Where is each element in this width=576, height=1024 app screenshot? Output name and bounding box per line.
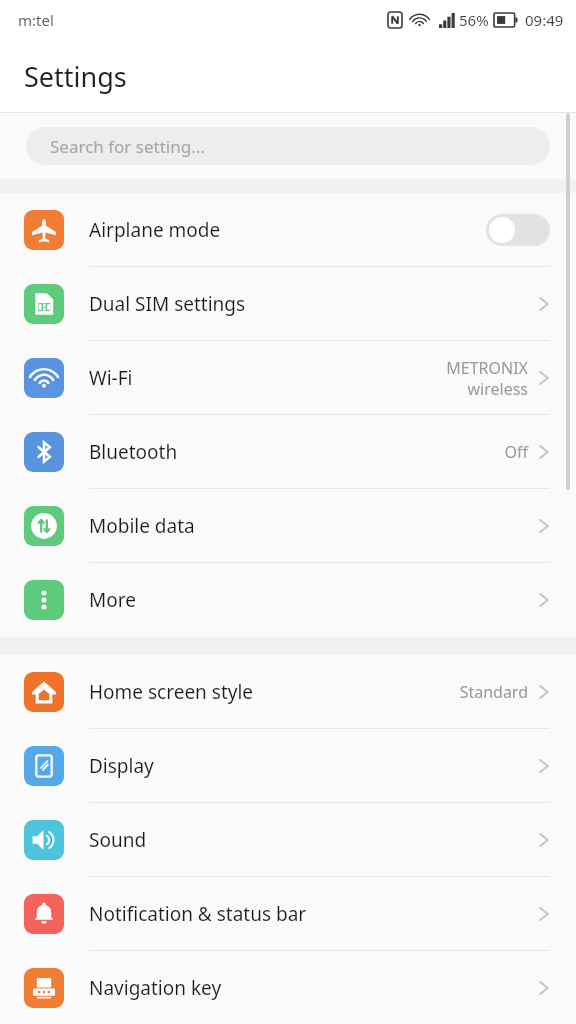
button[interactable]: Airplane mode toggle — [486, 214, 550, 246]
staticText: Mobile data — [89, 513, 538, 539]
staticText: Sound — [89, 827, 538, 853]
staticText: Wi-Fi — [89, 365, 446, 391]
button[interactable]: Mobile data — [0, 489, 576, 563]
staticText: More — [89, 587, 538, 613]
staticText: Standard — [459, 681, 528, 703]
staticText: Airplane mode — [89, 217, 486, 243]
button[interactable]: Search for setting... — [26, 127, 550, 165]
button[interactable]: More — [0, 563, 576, 637]
staticText: m:tel — [18, 10, 54, 30]
staticText: 09:49 — [525, 10, 564, 30]
button[interactable]: Bluetooth — [0, 415, 576, 489]
button[interactable]: Wi-Fi — [0, 341, 576, 415]
button[interactable]: Dual SIM settings — [0, 267, 576, 341]
staticText: Navigation key — [89, 975, 538, 1001]
button[interactable]: Home screen style — [0, 655, 576, 729]
staticText: Off — [504, 441, 528, 463]
staticText: Bluetooth — [89, 439, 504, 465]
staticText: Settings — [24, 58, 127, 95]
button[interactable]: Sound — [0, 803, 576, 877]
button[interactable]: Airplane mode — [0, 193, 576, 267]
staticText: Dual SIM settings — [89, 291, 538, 317]
staticText: METRONIX wireless — [446, 357, 528, 400]
button[interactable]: Notification & status bar — [0, 877, 576, 951]
staticText: Search for setting... — [50, 135, 205, 158]
button[interactable]: Display — [0, 729, 576, 803]
staticText: 56% — [459, 10, 489, 30]
staticText: Display — [89, 753, 538, 779]
button[interactable]: Navigation key — [0, 951, 576, 1024]
staticText: Notification & status bar — [89, 901, 538, 927]
staticText: Home screen style — [89, 679, 459, 705]
